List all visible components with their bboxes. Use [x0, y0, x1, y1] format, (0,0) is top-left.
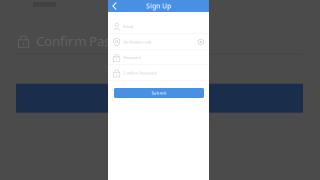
button[interactable]: Submit	[114, 88, 204, 98]
button[interactable]: Back	[108, 0, 121, 12]
staticText: Sign Up	[146, 2, 171, 10]
button[interactable]: Send verification code	[198, 39, 204, 45]
staticText: Confirm Password	[36, 32, 147, 50]
staticText: Password	[123, 55, 140, 60]
staticText: Submit	[151, 90, 166, 96]
staticText: Confirm Password	[123, 70, 156, 76]
staticText: Verification code	[123, 39, 151, 45]
staticText: Email	[123, 24, 133, 29]
